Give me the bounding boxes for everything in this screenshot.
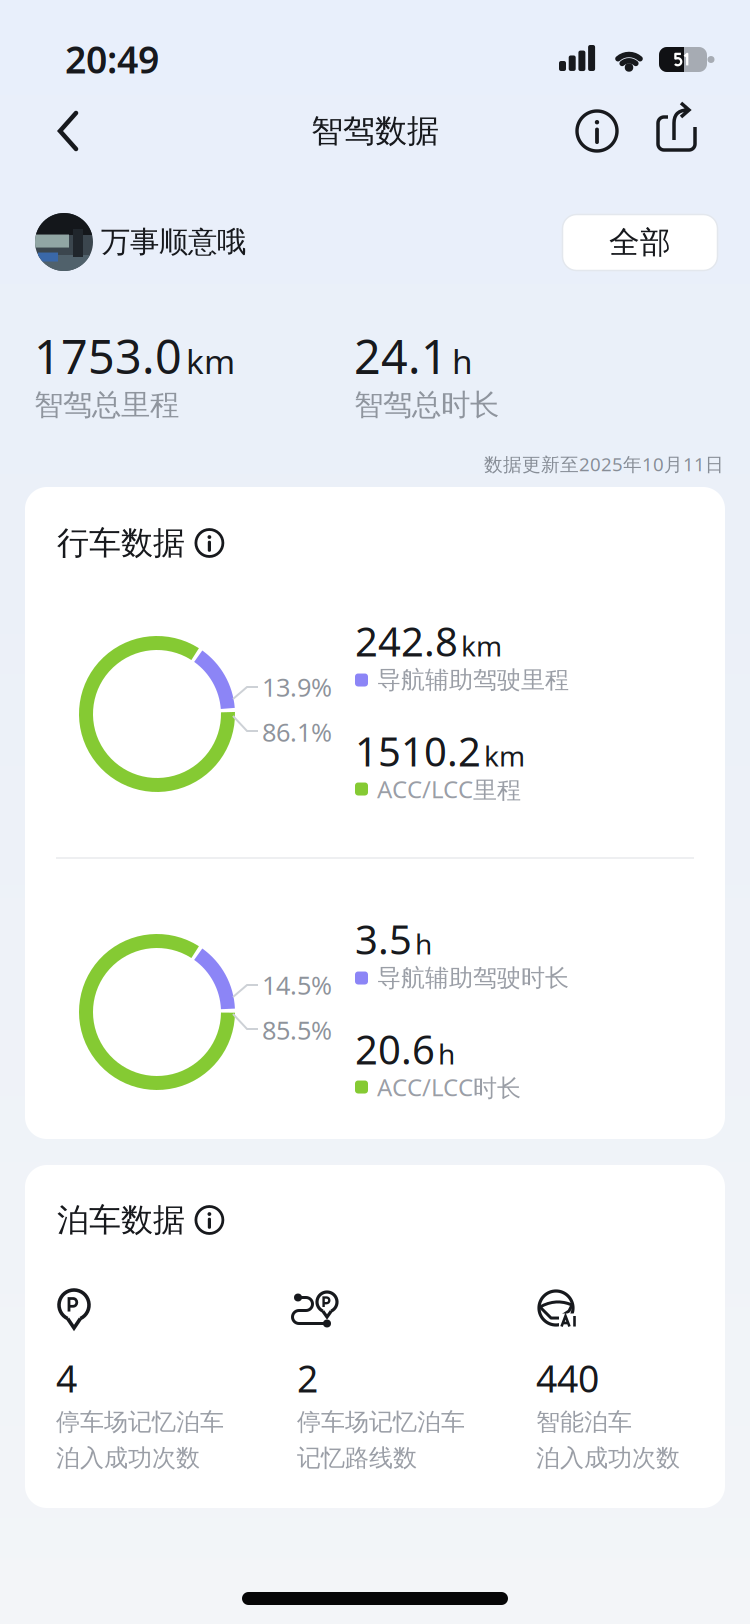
- staticText: 85.5%: [262, 1013, 332, 1047]
- staticText: h: [438, 1035, 455, 1072]
- staticText: 4: [56, 1353, 77, 1403]
- button[interactable]: 返回: [28, 101, 108, 161]
- staticText: h: [452, 339, 473, 383]
- staticText: 242.8: [355, 614, 458, 667]
- staticText: 1753.0: [34, 325, 182, 387]
- button[interactable]: 全部: [562, 214, 717, 270]
- staticText: 泊车数据: [57, 1200, 185, 1240]
- staticText: 14.5%: [262, 968, 332, 1002]
- button[interactable]: 行车数据说明: [194, 528, 225, 558]
- staticText: 停车场记忆泊车: [297, 1407, 465, 1437]
- staticText: 记忆路线数: [297, 1443, 417, 1473]
- staticText: 泊入成功次数: [56, 1443, 200, 1473]
- staticText: 3.5: [355, 912, 412, 965]
- staticText: 1510.2: [355, 724, 481, 777]
- staticText: 智驾总里程: [34, 387, 179, 423]
- button[interactable]: 说明: [567, 101, 627, 161]
- staticText: ACC/LCC里程: [377, 773, 521, 805]
- staticText: 智驾数据: [311, 111, 439, 151]
- staticText: 停车场记忆泊车: [56, 1407, 224, 1437]
- staticText: 行车数据: [57, 523, 185, 563]
- staticText: 24.1: [354, 325, 448, 387]
- staticText: km: [186, 339, 235, 383]
- staticText: 20:49: [65, 34, 159, 84]
- staticText: 泊入成功次数: [536, 1443, 680, 1473]
- staticText: 智能泊车: [536, 1407, 632, 1437]
- staticText: ACC/LCC时长: [377, 1071, 521, 1103]
- button[interactable]: 分享: [648, 101, 708, 161]
- staticText: 导航辅助驾驶里程: [377, 665, 569, 695]
- button[interactable]: 泊车数据说明: [194, 1205, 225, 1235]
- staticText: 13.9%: [262, 670, 332, 704]
- staticText: 440: [536, 1353, 599, 1403]
- staticText: 导航辅助驾驶时长: [377, 963, 569, 993]
- staticText: 全部: [609, 224, 671, 261]
- staticText: km: [461, 627, 502, 664]
- staticText: 数据更新至2025年10月11日: [484, 452, 724, 476]
- staticText: 万事顺意哦: [101, 224, 246, 260]
- staticText: h: [415, 925, 432, 962]
- staticText: km: [484, 737, 525, 774]
- staticText: 86.1%: [262, 715, 332, 749]
- staticText: 2: [297, 1353, 318, 1403]
- staticText: 20.6: [355, 1022, 435, 1075]
- staticText: 智驾总时长: [354, 387, 499, 423]
